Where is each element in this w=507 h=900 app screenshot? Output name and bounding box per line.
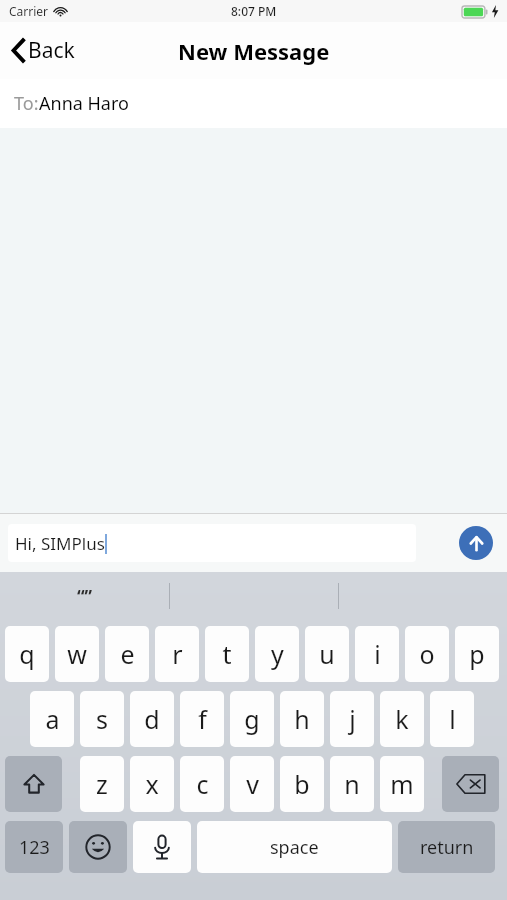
staticText: s	[96, 702, 108, 736]
staticText: w	[67, 637, 87, 671]
button[interactable]: u	[305, 626, 349, 682]
button[interactable]: t	[205, 626, 249, 682]
staticText: y	[271, 637, 284, 671]
button[interactable]: Dictation	[133, 821, 191, 873]
button[interactable]: p	[455, 626, 499, 682]
staticText: f	[198, 702, 207, 736]
button[interactable]: Backspace	[442, 756, 499, 812]
button[interactable]: h	[280, 691, 324, 747]
button[interactable]: y	[255, 626, 299, 682]
button[interactable]: space	[197, 821, 392, 873]
button[interactable]: r	[155, 626, 199, 682]
staticText: Carrier	[9, 3, 49, 19]
button[interactable]: Back	[0, 28, 89, 73]
button[interactable]: d	[130, 691, 174, 747]
staticText: u	[319, 637, 335, 671]
staticText: o	[419, 637, 435, 671]
staticText: i	[374, 637, 381, 671]
button[interactable]: 123	[5, 821, 63, 873]
button[interactable]: e	[105, 626, 149, 682]
staticText: q	[19, 637, 35, 671]
staticText: t	[222, 637, 232, 671]
button[interactable]: s	[80, 691, 124, 747]
staticText: b	[294, 767, 310, 801]
staticText: j	[349, 702, 356, 736]
staticText: e	[120, 637, 135, 671]
button[interactable]: Hi, SIMPlus	[8, 524, 416, 562]
staticText: m	[390, 767, 414, 801]
staticText: p	[469, 637, 485, 671]
staticText: l	[449, 702, 456, 736]
staticText: 123	[19, 835, 50, 860]
staticText: r	[172, 637, 183, 671]
staticText: New Message	[178, 36, 330, 66]
staticText: 8:07 PM	[231, 3, 277, 19]
staticText: space	[270, 835, 319, 860]
staticText: c	[196, 767, 209, 801]
button[interactable]: Shift	[5, 756, 62, 812]
staticText: Back	[28, 36, 75, 65]
staticText: Hi, SIMPlus	[15, 532, 105, 555]
staticText: h	[294, 702, 310, 736]
staticText: d	[144, 702, 160, 736]
staticText: n	[344, 767, 360, 801]
button[interactable]: x	[130, 756, 174, 812]
button[interactable]: z	[80, 756, 124, 812]
staticText: g	[244, 702, 260, 736]
button[interactable]: g	[230, 691, 274, 747]
button[interactable]: return	[398, 821, 495, 873]
button[interactable]: v	[230, 756, 274, 812]
button[interactable]: Send	[459, 526, 493, 560]
button[interactable]: m	[380, 756, 424, 812]
button[interactable]: n	[330, 756, 374, 812]
staticText: z	[96, 767, 108, 801]
staticText: To:	[14, 91, 39, 116]
button[interactable]: i	[355, 626, 399, 682]
button[interactable]: b	[280, 756, 324, 812]
button[interactable]: q	[5, 626, 49, 682]
button[interactable]: k	[380, 691, 424, 747]
button[interactable]: w	[55, 626, 99, 682]
button[interactable]: To:	[0, 79, 507, 128]
button[interactable]: f	[180, 691, 224, 747]
staticText: v	[246, 767, 259, 801]
staticText: k	[395, 702, 409, 736]
staticText: return	[420, 835, 474, 860]
staticText: a	[45, 702, 60, 736]
button[interactable]: o	[405, 626, 449, 682]
button[interactable]: Emoji	[69, 821, 127, 873]
staticText: Anna Haro	[39, 91, 129, 116]
button[interactable]: c	[180, 756, 224, 812]
button[interactable]: j	[330, 691, 374, 747]
button[interactable]: a	[30, 691, 74, 747]
staticText: “”	[77, 585, 93, 608]
button[interactable]: “”	[0, 572, 507, 620]
staticText: x	[145, 767, 159, 801]
button[interactable]: l	[430, 691, 474, 747]
